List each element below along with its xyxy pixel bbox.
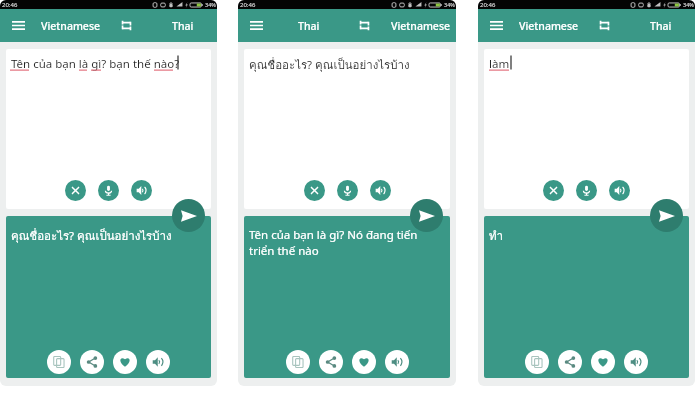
button[interactable]: Voice input: [337, 180, 358, 201]
button[interactable]: Thai: [648, 17, 674, 35]
staticText: 20:46: [480, 1, 496, 9]
button[interactable]: Open navigation menu: [478, 9, 514, 42]
button[interactable]: Add to favourites: [113, 350, 137, 374]
button[interactable]: Open navigation menu: [238, 9, 274, 42]
staticText: คุณชื่ออะไร? คุณเป็นอย่างไรบ้าง: [11, 227, 172, 245]
button[interactable]: Speak translation: [624, 350, 648, 374]
button[interactable]: Add to favourites: [591, 350, 615, 374]
button[interactable]: Translate: [410, 199, 443, 232]
button[interactable]: Share translation: [80, 350, 104, 374]
button[interactable]: Share translation: [558, 350, 582, 374]
button[interactable]: Vietnamese: [389, 17, 453, 35]
staticText: 34%: [205, 1, 216, 8]
button[interactable]: Swap languages: [583, 9, 626, 42]
staticText: 20:46: [240, 1, 256, 9]
button[interactable]: Clear text: [543, 180, 564, 201]
button[interactable]: Translate: [650, 199, 683, 232]
button[interactable]: Speak source text: [370, 180, 391, 201]
button[interactable]: Vietnamese: [39, 17, 103, 35]
staticText: 34%: [683, 1, 694, 8]
button[interactable]: Thai: [296, 17, 322, 35]
staticText: Tên của bạn là gì? bạn thế nào?: [11, 56, 180, 72]
button[interactable]: Copy translation: [525, 350, 549, 374]
button[interactable]: Clear text: [304, 180, 325, 201]
button[interactable]: Thai: [170, 17, 196, 35]
button[interactable]: Speak translation: [146, 350, 170, 374]
staticText: ทำ: [489, 227, 504, 245]
staticText: คุณชื่ออะไร? คุณเป็นอย่างไรบ้าง: [249, 56, 410, 74]
button[interactable]: Copy translation: [286, 350, 310, 374]
button[interactable]: Share translation: [319, 350, 343, 374]
button[interactable]: Swap languages: [105, 9, 148, 42]
staticText: 34%: [444, 1, 455, 8]
button[interactable]: Speak source text: [131, 180, 152, 201]
button[interactable]: Speak source text: [609, 180, 630, 201]
button[interactable]: Open navigation menu: [0, 9, 36, 42]
button[interactable]: Vietnamese: [517, 17, 581, 35]
button[interactable]: Speak translation: [385, 350, 409, 374]
button[interactable]: Swap languages: [343, 9, 386, 42]
button[interactable]: Add to favourites: [352, 350, 376, 374]
button[interactable]: Voice input: [98, 180, 119, 201]
button[interactable]: Voice input: [576, 180, 597, 201]
staticText: Tên của bạn là gì? Nó đang tiến triển th…: [249, 227, 419, 258]
button[interactable]: Translate: [172, 199, 205, 232]
staticText: 20:46: [2, 1, 18, 9]
button[interactable]: Copy translation: [47, 350, 71, 374]
button[interactable]: Clear text: [65, 180, 86, 201]
staticText: làm: [489, 56, 510, 72]
